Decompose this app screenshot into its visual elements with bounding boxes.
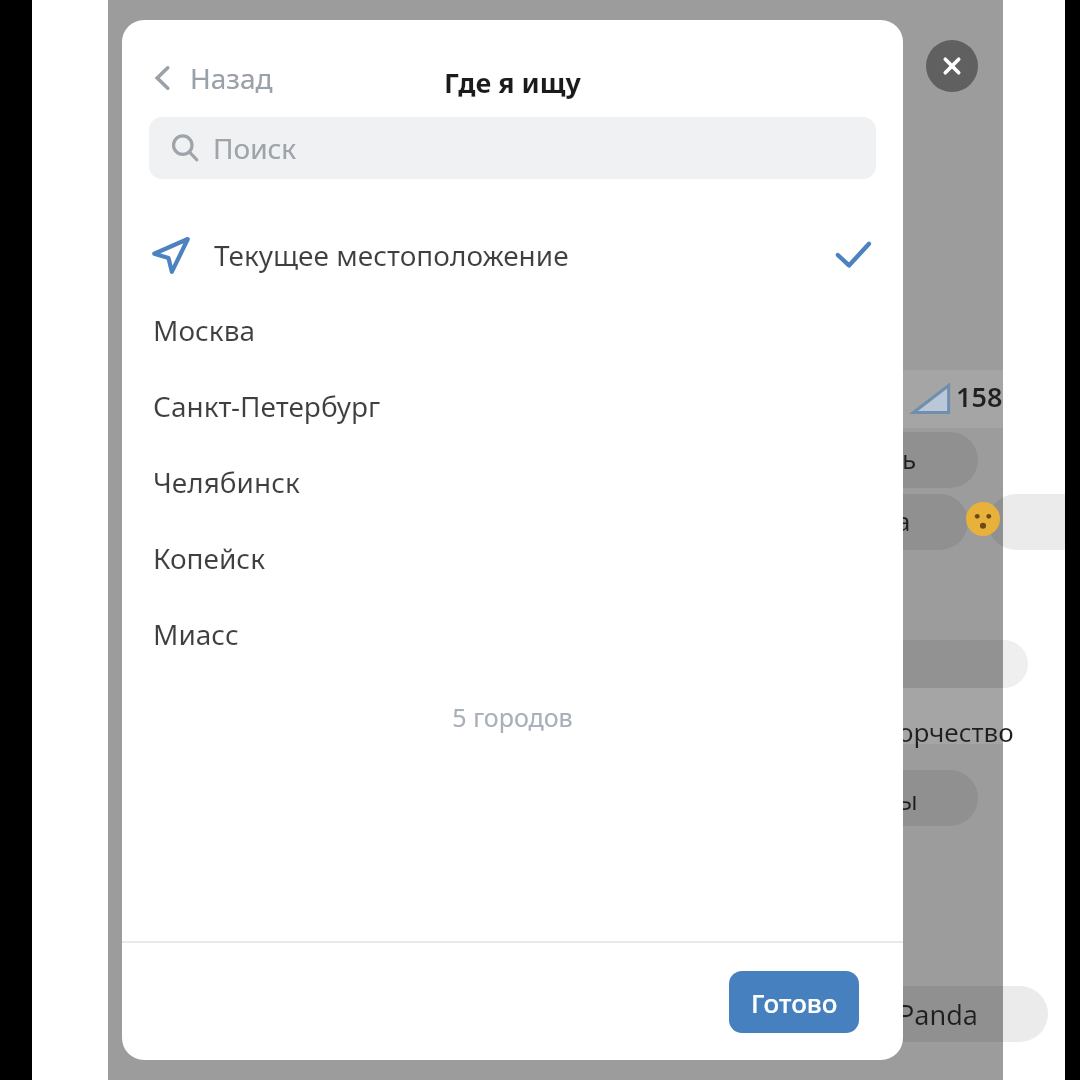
staticText: Челябинск — [153, 463, 300, 501]
staticText: Текущее местоположение — [214, 236, 569, 274]
staticText: ть — [890, 441, 917, 476]
button[interactable]: Поиск — [149, 117, 876, 179]
button[interactable]: Закрыть — [926, 40, 978, 92]
staticText: Москва — [153, 311, 256, 349]
staticText: 5 городов — [122, 700, 903, 734]
button[interactable]: Санкт-Петербург — [122, 368, 903, 444]
staticText: ы — [898, 782, 918, 817]
staticText: Поиск — [213, 129, 297, 167]
staticText: Санкт-Петербург — [153, 387, 381, 425]
staticText: а — [896, 503, 911, 538]
staticText: Копейск — [153, 539, 266, 577]
button[interactable]: Готово — [729, 971, 859, 1033]
button[interactable]: Текущее местоположение — [122, 212, 903, 298]
button[interactable]: Назад — [146, 42, 273, 114]
button[interactable]: Копейск — [122, 520, 903, 596]
staticText: орчество — [898, 714, 1014, 749]
button[interactable]: Москва — [122, 292, 903, 368]
staticText: Готово — [751, 985, 838, 1020]
button[interactable]: Челябинск — [122, 444, 903, 520]
staticText: Panda — [898, 996, 978, 1033]
staticText: Назад — [190, 59, 273, 97]
staticText: Где я ищу — [122, 64, 903, 101]
button[interactable]: Миасс — [122, 596, 903, 672]
staticText: Миасс — [153, 615, 239, 653]
staticText: 158 — [956, 378, 1010, 415]
